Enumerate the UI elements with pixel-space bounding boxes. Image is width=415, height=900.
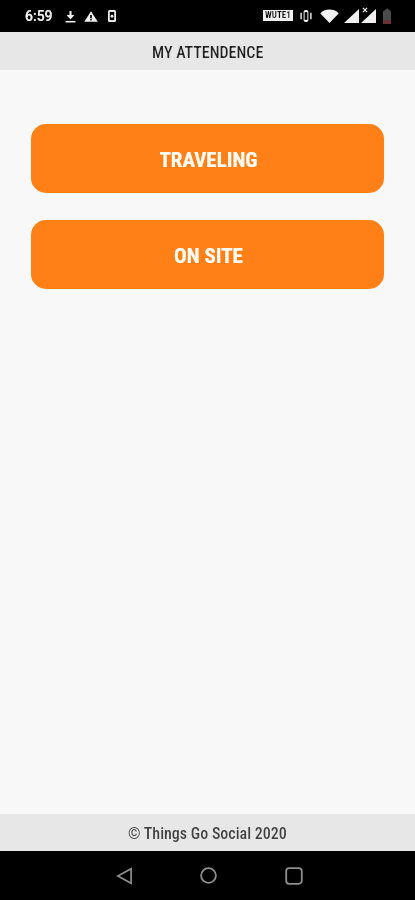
button[interactable]: Home — [184, 853, 232, 898]
staticText: TRAVELING — [159, 148, 258, 173]
button[interactable]: Back — [100, 853, 148, 898]
staticText: ON SITE — [174, 244, 243, 269]
staticText: MY ATTENDENCE — [152, 43, 264, 62]
button[interactable]: ON SITE — [31, 220, 384, 289]
staticText: © Things Go Social 2020 — [128, 824, 287, 843]
staticText: 6:59 — [25, 8, 53, 24]
button[interactable]: TRAVELING — [31, 124, 384, 193]
staticText: WUTE1 — [265, 10, 291, 21]
button[interactable]: Recent apps — [270, 853, 318, 898]
